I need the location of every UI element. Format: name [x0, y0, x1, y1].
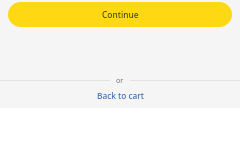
button[interactable]: Continue: [8, 2, 232, 27]
staticText: Continue: [102, 9, 139, 20]
button[interactable]: Back to cart: [87, 87, 154, 104]
staticText: Back to cart: [97, 90, 144, 101]
staticText: or: [116, 75, 124, 85]
